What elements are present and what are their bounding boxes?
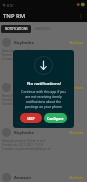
staticText: Contact: xx-placement@iitx.ac.in (2, 57, 51, 61)
staticText: Medium (69, 85, 84, 90)
button[interactable]: Amazon (0, 171, 87, 182)
staticText: Buyhatke (14, 40, 35, 46)
staticText: Buyhatke (14, 85, 35, 91)
staticText: Posted on: 22-7-2021 11:18 (2, 143, 43, 147)
button[interactable]: NOTIFICATIONS (1, 25, 31, 33)
button[interactable]: SKIP (20, 113, 42, 123)
staticText: Configure (47, 116, 64, 121)
staticText: Buyhatke (14, 130, 35, 136)
staticText: Posted on: 22-7-2021 11:18 (2, 98, 43, 102)
button[interactable]: More options (76, 11, 85, 20)
staticText: Medium (69, 175, 84, 180)
staticText: Amazon (14, 175, 31, 181)
button[interactable]: Buyhatke (0, 36, 87, 81)
staticText: Contact: xx-placement@iitx.ac.in (2, 102, 51, 106)
staticText: SKIP (27, 116, 35, 121)
staticText: WEBINARS (35, 27, 51, 31)
staticText: No notifications! (27, 80, 61, 86)
staticText: TNP RM (3, 12, 26, 20)
button[interactable]: Buyhatke (0, 81, 87, 126)
button[interactable]: Buyhatke (0, 126, 87, 171)
staticText: Medium (69, 40, 84, 45)
button[interactable]: WEBINARS (31, 25, 55, 33)
staticText: NOTIFICATIONS (5, 27, 28, 31)
staticText: BTU (7, 3, 14, 7)
staticText: New job posted. Check it out! (2, 49, 46, 53)
button[interactable]: Configure (44, 113, 67, 123)
staticText: New job posted. Check it out! (2, 94, 46, 98)
staticText: Posted on: 22-7-2021 11:18 (2, 53, 43, 57)
staticText: Contact: xx-placement@iitx.ac.in (2, 147, 51, 151)
staticText: Continue with this app if you are not re… (21, 89, 66, 109)
staticText: Medium (69, 130, 84, 135)
staticText: New job posted. Check it out! (2, 139, 46, 143)
